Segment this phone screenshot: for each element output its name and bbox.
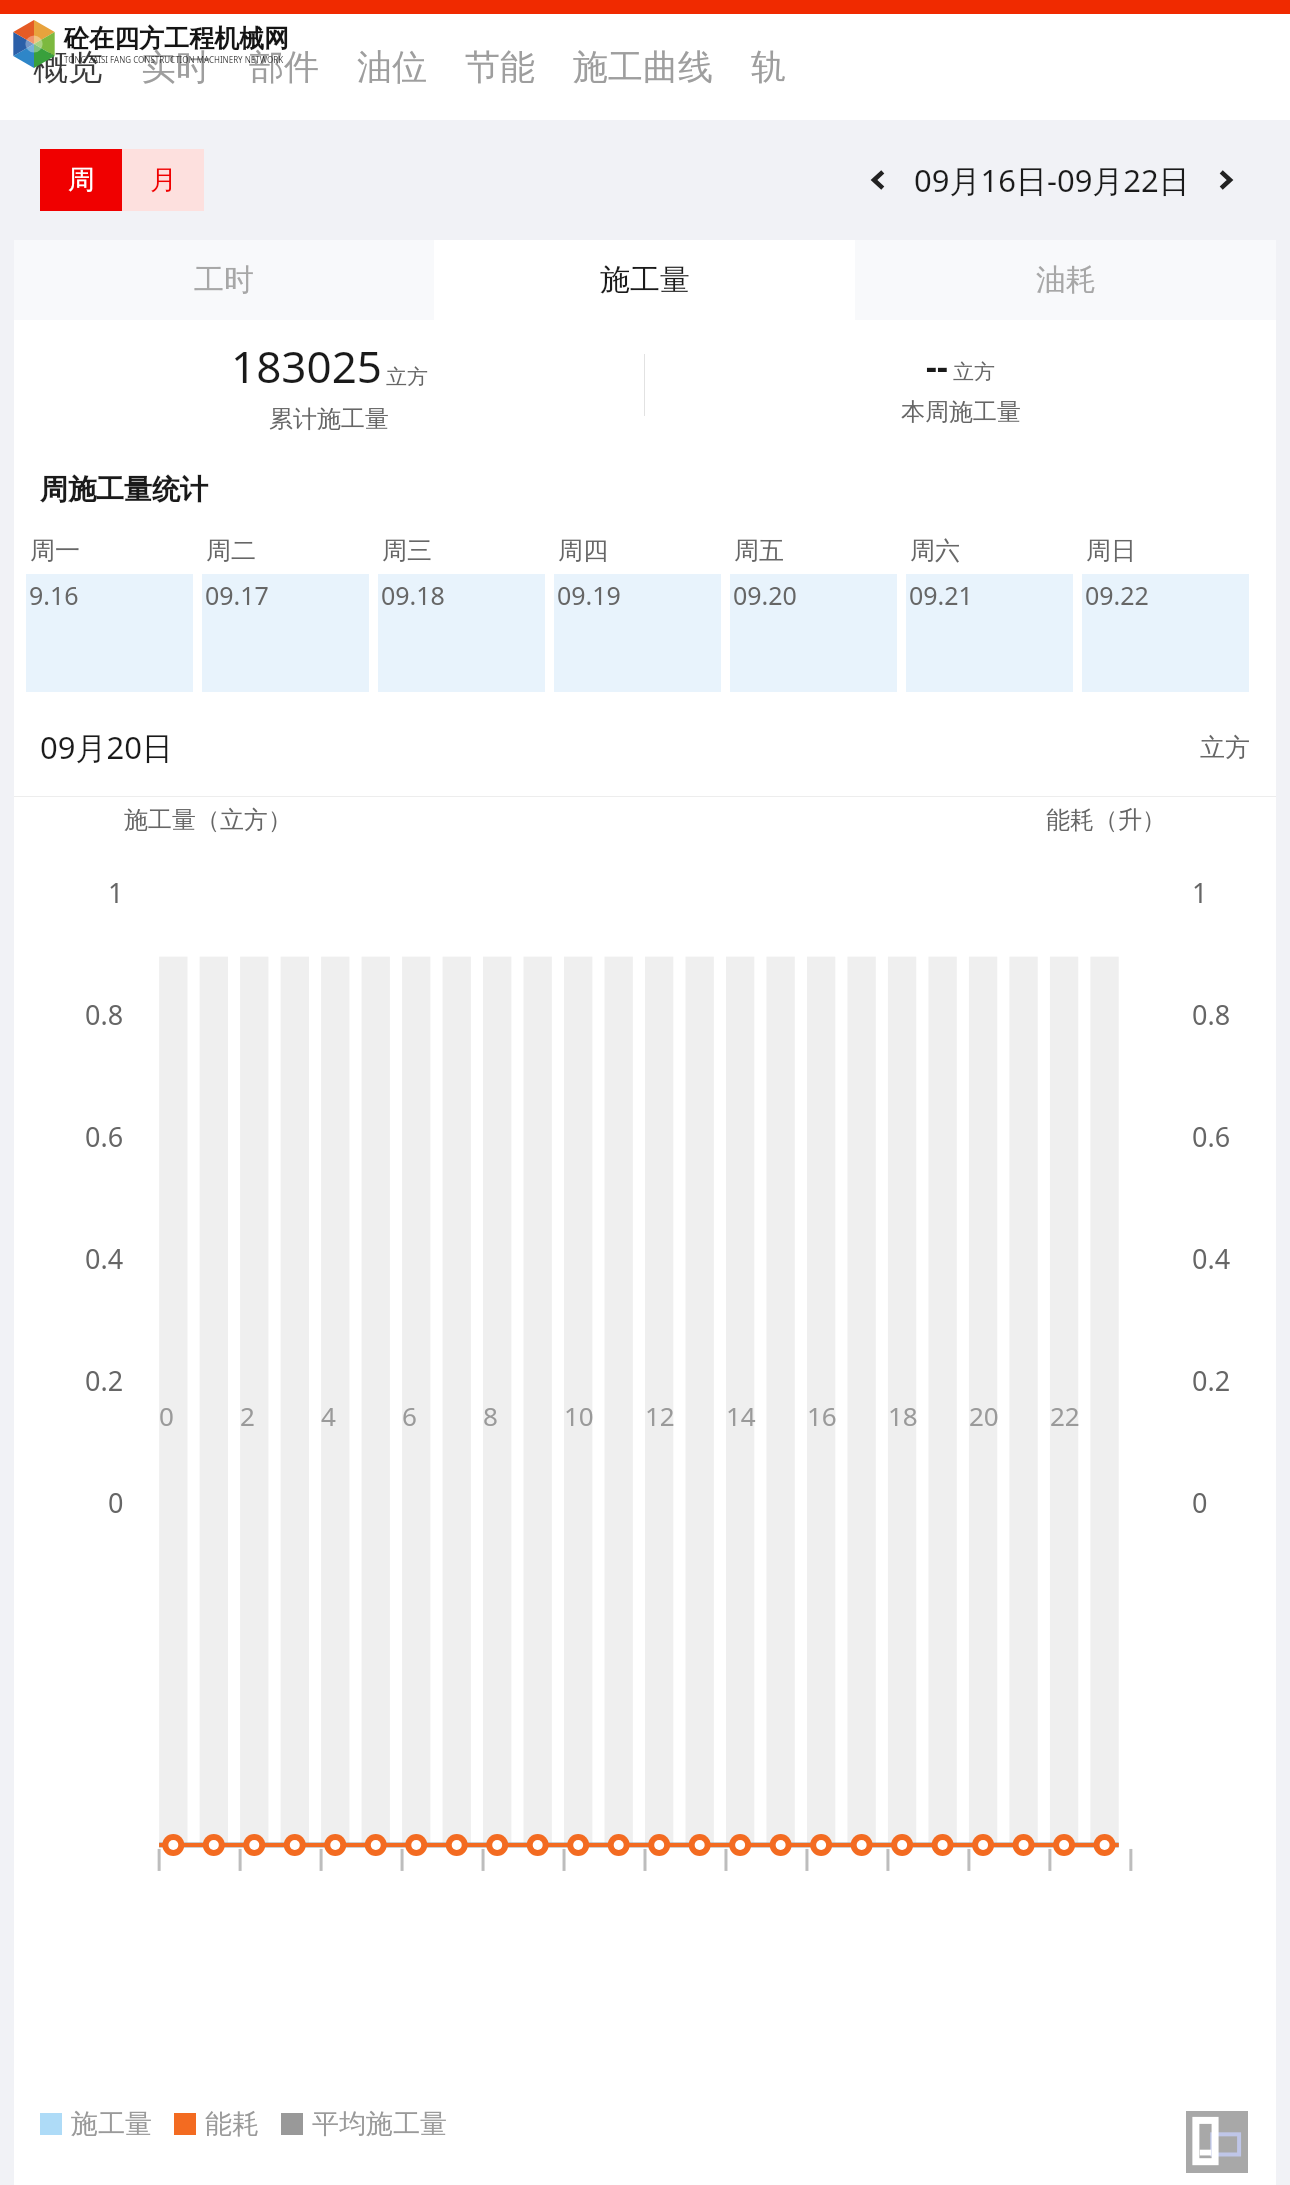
button[interactable]: 月 (122, 149, 204, 211)
staticText: -- (926, 343, 948, 389)
staticText: 本周施工量 (901, 397, 1021, 427)
staticText: 0 (1192, 1484, 1208, 1521)
button[interactable]: Previous week (844, 145, 914, 215)
staticText: 0.2 (85, 1362, 124, 1399)
staticText: 工时 (194, 261, 254, 299)
staticText: 实时 (141, 45, 211, 89)
staticText: 能耗（升） (1046, 805, 1166, 835)
staticText: 周六 (910, 535, 960, 566)
staticText: 16 (807, 1398, 837, 1433)
staticText: 部件 (249, 45, 319, 89)
button[interactable]: 轨 (751, 45, 786, 89)
staticText: 施工量 (600, 261, 690, 299)
staticText: 09.18 (381, 578, 445, 612)
staticText: 周施工量统计 (40, 472, 208, 507)
staticText: 0 (159, 1398, 174, 1433)
button[interactable]: 09.22 (1082, 574, 1249, 692)
button[interactable]: 油位 (357, 45, 427, 89)
button[interactable]: 周 (40, 149, 122, 211)
staticText: 6 (402, 1398, 417, 1433)
staticText: 09.17 (205, 578, 269, 612)
staticText: 施工量 (71, 2107, 152, 2141)
staticText: 轨 (751, 45, 786, 89)
staticText: 09.22 (1085, 578, 1149, 612)
staticText: 22 (1050, 1398, 1080, 1433)
button[interactable]: 实时 (141, 45, 211, 89)
button[interactable]: 09.17 (202, 574, 369, 692)
staticText: 周 (68, 163, 95, 197)
staticText: 0.2 (1192, 1362, 1231, 1399)
staticText: 油位 (357, 45, 427, 89)
staticText: 18 (888, 1398, 918, 1433)
button[interactable]: 油耗 (855, 240, 1276, 320)
staticText: 14 (726, 1398, 756, 1433)
button[interactable]: Next week (1190, 145, 1260, 215)
staticText: 周二 (206, 535, 256, 566)
staticText: 20 (969, 1398, 999, 1433)
staticText: 砼在四方工程机械网 (64, 23, 289, 54)
staticText: 周一 (30, 535, 80, 566)
button[interactable]: 工时 (14, 240, 434, 320)
button[interactable]: 部件 (249, 45, 319, 89)
button[interactable]: 09.19 (554, 574, 721, 692)
staticText: 周五 (734, 535, 784, 566)
staticText: 09.20 (733, 578, 797, 612)
staticText: 概览 (33, 45, 103, 89)
staticText: 月 (150, 163, 177, 197)
button[interactable]: 09.20 (730, 574, 897, 692)
staticText: 立方 (953, 359, 995, 385)
button[interactable]: 09.21 (906, 574, 1073, 692)
staticText: 9.16 (29, 578, 79, 612)
staticText: 油耗 (1036, 261, 1096, 299)
button[interactable]: 09.18 (378, 574, 545, 692)
staticText: 0.8 (85, 996, 124, 1033)
staticText: 0.4 (85, 1240, 124, 1277)
staticText: 4 (321, 1398, 336, 1433)
staticText: 周日 (1086, 535, 1136, 566)
staticText: 2 (240, 1398, 255, 1433)
staticText: 施工曲线 (573, 45, 713, 89)
staticText: 0.6 (85, 1118, 124, 1155)
button[interactable]: 概览 (33, 45, 103, 89)
button[interactable]: 施工量 (434, 240, 855, 320)
staticText: 立方 (386, 364, 428, 390)
staticText: 1 (1192, 874, 1208, 911)
staticText: 施工量（立方） (124, 805, 292, 835)
staticText: 0.6 (1192, 1118, 1231, 1155)
staticText: 1 (108, 874, 124, 911)
staticText: 立方 (1200, 732, 1250, 763)
staticText: 09.21 (909, 578, 973, 612)
staticText: 09.19 (557, 578, 621, 612)
staticText: 平均施工量 (312, 2107, 447, 2141)
button[interactable]: Rotate screen (1186, 2111, 1248, 2173)
staticText: 12 (645, 1398, 675, 1433)
staticText: 0.4 (1192, 1240, 1231, 1277)
staticText: 0.8 (1192, 996, 1231, 1033)
staticText: 周四 (558, 535, 608, 566)
staticText: 节能 (465, 45, 535, 89)
staticText: 09月16日-09月22日 (914, 159, 1190, 201)
staticText: 能耗 (205, 2107, 259, 2141)
staticText: 09月20日 (40, 726, 173, 768)
staticText: 183025 (231, 336, 383, 396)
staticText: 周三 (382, 535, 432, 566)
button[interactable]: 9.16 (26, 574, 193, 692)
staticText: TONG ZAISI FANG CONSTRUCTION MACHINERY N… (64, 54, 284, 65)
staticText: 累计施工量 (269, 404, 389, 434)
button[interactable]: 节能 (465, 45, 535, 89)
button[interactable]: 施工曲线 (573, 45, 713, 89)
staticText: 8 (483, 1398, 498, 1433)
staticText: 10 (564, 1398, 594, 1433)
staticText: 0 (108, 1484, 124, 1521)
